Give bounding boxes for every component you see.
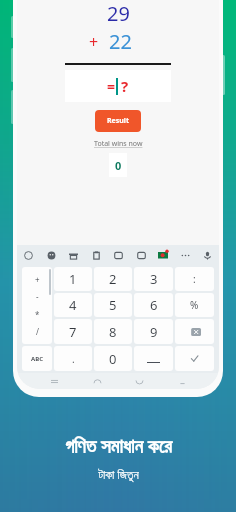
staticText: + xyxy=(89,31,99,53)
button[interactable]: 1 xyxy=(54,267,92,291)
button[interactable]: Clipboard xyxy=(91,250,102,261)
staticText: 4 xyxy=(69,296,77,314)
button[interactable]: 3 xyxy=(134,267,173,291)
button[interactable]: % xyxy=(175,293,214,317)
staticText: 3 xyxy=(150,270,158,288)
staticText: 5 xyxy=(109,296,117,314)
button[interactable]: Text box xyxy=(136,250,147,261)
staticText: 2 xyxy=(109,270,117,288)
staticText: % xyxy=(190,298,199,312)
staticText: গণিত সমাধান করে xyxy=(65,433,172,459)
button[interactable]: Recents xyxy=(48,375,60,387)
button[interactable]: = xyxy=(65,70,171,102)
button[interactable]: Home xyxy=(91,375,103,387)
button[interactable]: Result xyxy=(95,110,141,132)
button[interactable]: + xyxy=(22,267,52,344)
button[interactable]: 8 xyxy=(94,319,132,344)
staticText: 7 xyxy=(69,323,77,341)
staticText: টাকা জিতুন xyxy=(98,466,139,482)
button[interactable]: 0 xyxy=(94,346,132,371)
staticText: 22 xyxy=(109,28,132,55)
button[interactable]: Keyboard xyxy=(176,375,188,387)
staticText: - xyxy=(36,291,39,302)
button[interactable]: 5 xyxy=(94,293,132,317)
staticText: / xyxy=(36,326,39,337)
button[interactable]: ABC xyxy=(22,346,52,371)
button[interactable]: Space xyxy=(134,346,173,371)
staticText: : xyxy=(193,272,196,286)
button[interactable]: 7 xyxy=(54,319,92,344)
staticText: 9 xyxy=(150,323,158,341)
button[interactable]: More options xyxy=(180,250,191,261)
staticText: Result xyxy=(107,116,129,126)
staticText: + xyxy=(35,274,40,285)
staticText: 1 xyxy=(69,270,77,288)
button[interactable]: : xyxy=(175,267,214,291)
staticText: ? xyxy=(121,76,129,96)
button[interactable]: Back xyxy=(133,375,145,387)
button[interactable]: Language xyxy=(158,250,168,260)
staticText: 8 xyxy=(109,323,117,341)
staticText: Total wins now xyxy=(94,139,143,149)
staticText: 0 xyxy=(115,158,122,173)
button[interactable]: 6 xyxy=(134,293,173,317)
button[interactable]: 9 xyxy=(134,319,173,344)
button[interactable]: Enter xyxy=(175,346,214,371)
button[interactable]: . xyxy=(54,346,92,371)
button[interactable]: GIF xyxy=(113,250,124,261)
staticText: . xyxy=(72,352,75,366)
staticText: * xyxy=(35,309,40,320)
button[interactable]: Voice input xyxy=(202,250,213,261)
button[interactable]: 2 xyxy=(94,267,132,291)
button[interactable]: Stickers xyxy=(68,250,79,261)
staticText: 29 xyxy=(107,0,130,27)
staticText: = xyxy=(107,77,116,96)
staticText: 0 xyxy=(109,350,117,368)
button[interactable]: Translate xyxy=(23,250,34,261)
button[interactable]: Emoji xyxy=(46,250,57,261)
button[interactable]: 4 xyxy=(54,293,92,317)
button[interactable]: Backspace xyxy=(175,319,214,344)
staticText: 6 xyxy=(150,296,158,314)
staticText: ABC xyxy=(31,355,43,363)
